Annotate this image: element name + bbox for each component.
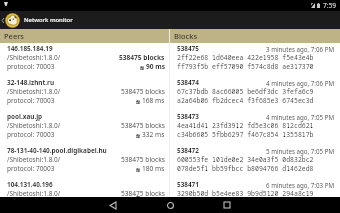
button[interactable]: Back bbox=[94, 197, 132, 213]
staticText: 538471 bbox=[177, 180, 199, 189]
staticText: 3290b50d b5e4ee83 9b9d5120 294a8c19 bbox=[177, 189, 314, 197]
button[interactable]: Navigate up bbox=[0, 11, 5, 29]
staticText: Peers bbox=[4, 31, 25, 41]
staticText: 67c37bdb 8ac66005 be6df3dc 3fefa6c9 bbox=[177, 87, 314, 96]
staticText: protocol: 70003 bbox=[7, 130, 55, 139]
button[interactable]: pool.xau.jp bbox=[0, 111, 169, 145]
staticText: protocol: 70003 bbox=[7, 62, 55, 71]
button[interactable]: 538474 bbox=[170, 77, 340, 111]
staticText: 78-131-40-140.pool.digikabel.hu bbox=[7, 146, 107, 155]
button[interactable]: 538471 bbox=[170, 179, 340, 197]
button[interactable]: 104.131.40.196 bbox=[0, 179, 169, 197]
staticText: 600553fe 101de0e2 34e0a3f5 0d832bc2 bbox=[177, 155, 314, 164]
staticText: /Shibetoshi:1.8.0/ bbox=[7, 87, 61, 96]
button[interactable]: 538473 bbox=[170, 111, 340, 145]
button[interactable]: 538472 bbox=[170, 145, 340, 179]
staticText: 104.131.40.196 bbox=[7, 180, 53, 189]
staticText: 538475 bbox=[177, 44, 199, 53]
staticText: pool.xau.jp bbox=[7, 112, 43, 121]
staticText: /Shibetoshi:1.8.0/ bbox=[7, 53, 61, 62]
staticText: 7:59 bbox=[323, 1, 337, 10]
staticText: 3 minutes ago, 7:06 PM bbox=[266, 45, 335, 53]
staticText: Blocks bbox=[174, 31, 198, 41]
staticText: 5 minutes ago, 7:05 PM bbox=[266, 147, 335, 155]
staticText: 4 minutes ago, 7:05 PM bbox=[266, 113, 335, 121]
button[interactable]: 146.185.184.19 bbox=[0, 43, 169, 77]
staticText: /Shibetoshi:1.8.0/ bbox=[7, 155, 61, 164]
staticText: /Shibetoshi:1.8.0/ bbox=[7, 189, 61, 197]
staticText: Network monitor bbox=[24, 16, 73, 24]
staticText: 538475 blocks bbox=[119, 53, 165, 62]
staticText: 32-148.izhnt.ru bbox=[7, 78, 55, 87]
button[interactable]: Recent apps bbox=[208, 197, 246, 213]
staticText: c34b6605 5fbb6297 f467c854 1355817b bbox=[177, 130, 314, 139]
staticText: 538475 blocks bbox=[121, 189, 165, 197]
staticText: protocol: 70003 bbox=[7, 164, 55, 173]
button[interactable]: 538475 bbox=[170, 43, 340, 77]
staticText: 146.185.184.19 bbox=[7, 44, 53, 53]
staticText: 4ea41d41 23fd3912 fd5e3c06 812cd621 bbox=[177, 121, 314, 130]
staticText: 538475 blocks bbox=[121, 87, 165, 96]
staticText: 4 minutes ago, 7:06 PM bbox=[266, 79, 335, 87]
staticText: a2a64b06 fb2dcec4 f3f685e3 6745ec3d bbox=[177, 96, 314, 105]
staticText: 538472 bbox=[177, 146, 199, 155]
staticText: 538473 bbox=[177, 112, 199, 121]
staticText: 2ff22e68 1d640eea 422e1958 f5e43e4b bbox=[177, 53, 314, 62]
staticText: 168 ms bbox=[142, 96, 165, 105]
staticText: 078de5f1 bb59fbcc b8094766 d1462ed8 bbox=[177, 164, 314, 173]
staticText: /Shibetoshi:1.8.0/ bbox=[7, 121, 61, 130]
staticText: 6 minutes ago, 7:03 PM bbox=[266, 181, 335, 189]
staticText: 180 ms bbox=[142, 164, 165, 173]
staticText: protocol: 70003 bbox=[7, 96, 55, 105]
staticText: 332 ms bbox=[142, 130, 165, 139]
staticText: 90 ms bbox=[146, 62, 165, 71]
staticText: 538475 blocks bbox=[121, 121, 165, 130]
button[interactable]: Home bbox=[151, 197, 189, 213]
button[interactable]: 32-148.izhnt.ru bbox=[0, 77, 169, 111]
staticText: ff793f5b eff57090 f574c8d8 ae317370 bbox=[177, 62, 314, 71]
staticText: 538475 blocks bbox=[121, 155, 165, 164]
button[interactable]: 78-131-40-140.pool.digikabel.hu bbox=[0, 145, 169, 179]
staticText: 538474 bbox=[177, 78, 199, 87]
